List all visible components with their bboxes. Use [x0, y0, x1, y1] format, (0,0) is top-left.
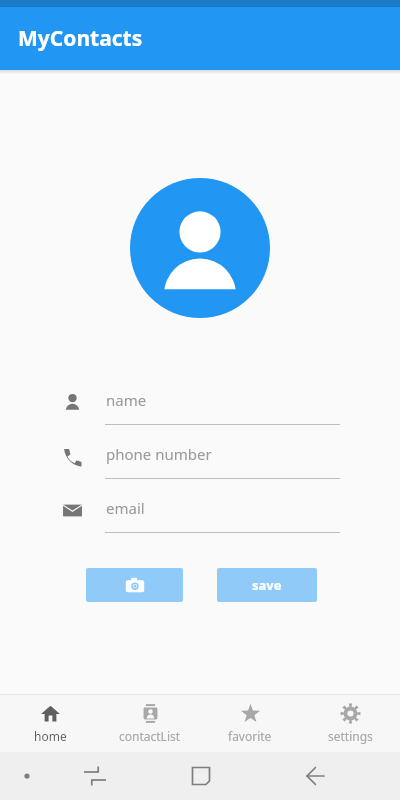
button[interactable]: email	[0, 488, 400, 542]
staticText: home	[34, 728, 67, 744]
staticText: save	[252, 576, 282, 594]
button[interactable]: home	[0, 695, 100, 752]
staticText: contactList	[119, 728, 181, 744]
staticText: favorite	[228, 728, 272, 744]
staticText: phone number	[106, 444, 212, 464]
button[interactable]: name	[0, 380, 400, 434]
staticText: email	[106, 498, 145, 518]
staticText: settings	[328, 728, 373, 744]
button[interactable]: settings	[300, 695, 400, 752]
button[interactable]: Take photo	[86, 568, 183, 602]
button[interactable]: contactList	[100, 695, 200, 752]
button[interactable]: favorite	[200, 695, 300, 752]
staticText: MyContacts	[18, 24, 143, 53]
button[interactable]: phone number	[0, 434, 400, 488]
staticText: name	[106, 390, 147, 410]
button[interactable]: save	[217, 568, 317, 602]
